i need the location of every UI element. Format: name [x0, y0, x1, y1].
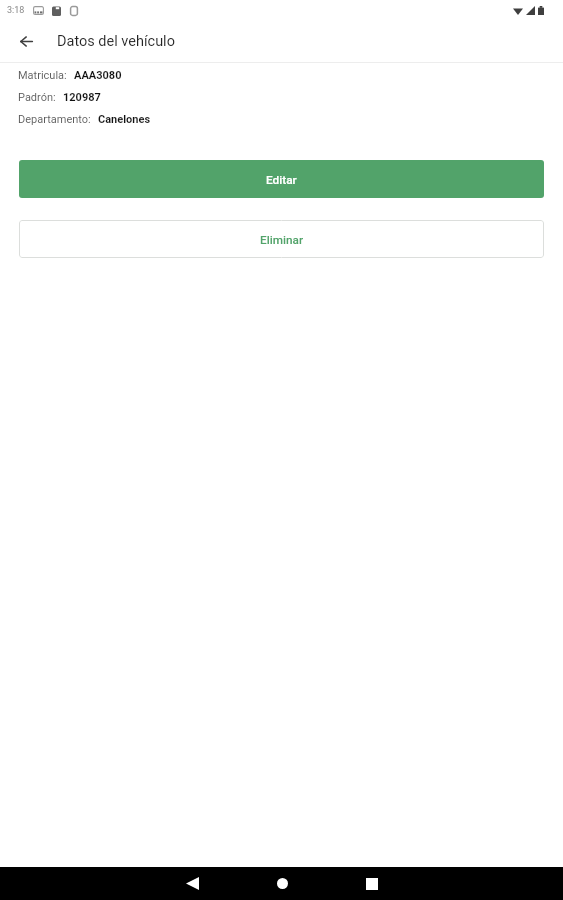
staticText: Matricula: [18, 69, 67, 82]
staticText: Eliminar [260, 233, 304, 247]
staticText: Editar [266, 173, 297, 187]
staticText: 120987 [63, 91, 101, 104]
staticText: 3:18 [7, 5, 25, 16]
staticText: Canelones [98, 113, 151, 126]
staticText: AAA3080 [74, 69, 122, 82]
staticText: Datos del vehículo [57, 33, 175, 50]
button[interactable]: Eliminar [19, 220, 544, 258]
button[interactable]: Back [147, 867, 237, 900]
button[interactable]: Back [11, 27, 41, 57]
button[interactable]: Recent apps [327, 867, 417, 900]
staticText: Padrón: [18, 91, 56, 104]
staticText: Departamento: [18, 113, 91, 126]
button[interactable]: Editar [19, 160, 544, 198]
button[interactable]: Home [237, 867, 327, 900]
